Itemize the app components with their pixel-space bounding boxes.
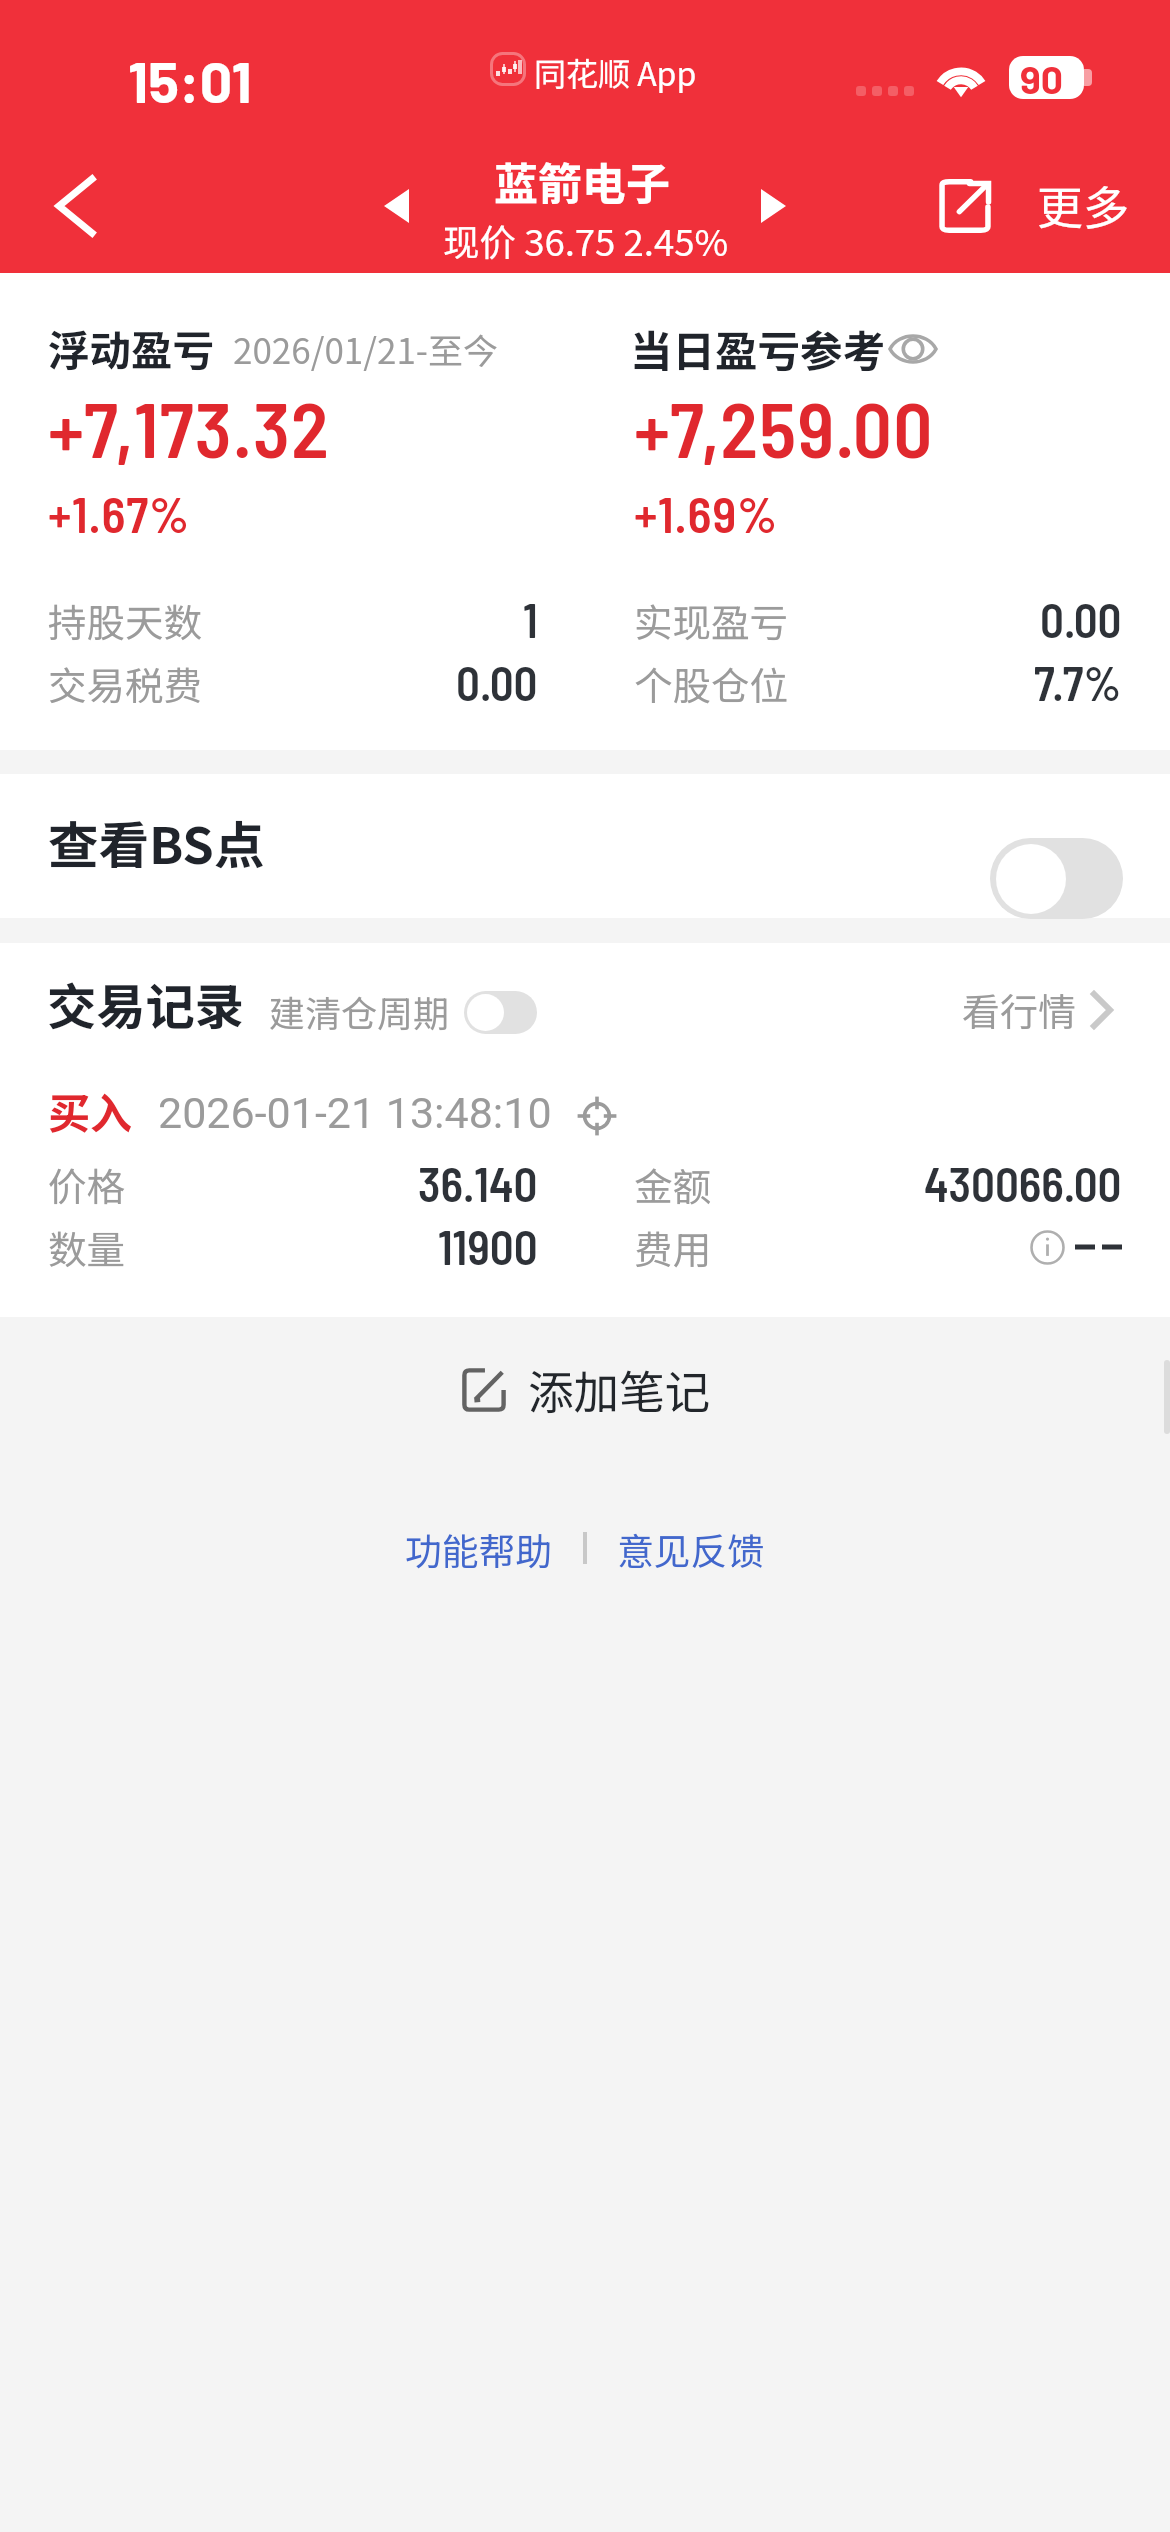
- staticText: 同花顺 App: [534, 49, 697, 95]
- staticText: 430066.00: [924, 1155, 1122, 1211]
- button[interactable]: Previous stock: [356, 172, 436, 240]
- staticText: 建清仓周期: [269, 985, 450, 1037]
- staticText: +7,259.00: [634, 381, 934, 473]
- button[interactable]: Toggle: [990, 838, 1123, 919]
- staticText: +1.69%: [634, 483, 778, 543]
- staticText: 现价 36.75 2.45%: [443, 214, 729, 267]
- staticText: 个股仓位: [634, 655, 789, 711]
- staticText: 1: [523, 591, 538, 647]
- button[interactable]: 添加笔记: [0, 1355, 1170, 1425]
- staticText: 蓝箭电子: [494, 149, 670, 213]
- staticText: 交易记录: [47, 968, 245, 1039]
- staticText: 看行情: [962, 982, 1077, 1037]
- staticText: 功能帮助: [405, 1522, 553, 1575]
- button[interactable]: 更多: [1024, 138, 1142, 273]
- staticText: 买入: [48, 1080, 133, 1141]
- staticText: 实现盈亏: [634, 592, 789, 648]
- button[interactable]: 功能帮助: [391, 1522, 567, 1575]
- staticText: 金额: [634, 1156, 712, 1212]
- staticText: 36.140: [418, 1155, 538, 1211]
- staticText: 浮动盈亏: [48, 318, 215, 378]
- staticText: +1.67%: [48, 483, 190, 543]
- staticText: 2026/01/21-至今: [233, 323, 498, 374]
- staticText: 15:01: [128, 46, 252, 114]
- button[interactable]: Hide amount: [886, 322, 940, 376]
- staticText: +7,173.32: [48, 381, 330, 473]
- button[interactable]: Next stock: [733, 172, 813, 240]
- staticText: 2026-01-21 13:48:10: [158, 1088, 552, 1138]
- button[interactable]: Toggle: [464, 991, 537, 1034]
- staticText: 意见反馈: [617, 1522, 765, 1575]
- button[interactable]: 看行情: [962, 982, 1113, 1037]
- staticText: 90: [1020, 56, 1063, 98]
- staticText: 持股天数: [48, 592, 203, 648]
- staticText: 7.7%: [1034, 654, 1122, 710]
- staticText: 费用: [634, 1219, 712, 1275]
- staticText: 交易税费: [48, 655, 203, 711]
- button[interactable]: 意见反馈: [603, 1522, 779, 1575]
- staticText: 查看BS点: [48, 805, 265, 878]
- staticText: 0.00: [1040, 591, 1122, 647]
- button[interactable]: 建清仓周期: [269, 985, 537, 1037]
- staticText: 价格: [48, 1156, 126, 1212]
- staticText: 0.00: [456, 654, 538, 710]
- staticText: 添加笔记: [528, 1356, 711, 1422]
- button[interactable]: Back: [0, 138, 150, 273]
- staticText: 11900: [438, 1218, 538, 1274]
- button[interactable]: Fee info: [1029, 1229, 1065, 1265]
- button[interactable]: Locate trade: [573, 1092, 621, 1140]
- staticText: 更多: [1037, 172, 1129, 239]
- staticText: 数量: [48, 1219, 126, 1275]
- button[interactable]: 查看BS点: [0, 774, 1170, 918]
- button[interactable]: Share: [910, 138, 1020, 273]
- staticText: 当日盈亏参考: [630, 318, 886, 380]
